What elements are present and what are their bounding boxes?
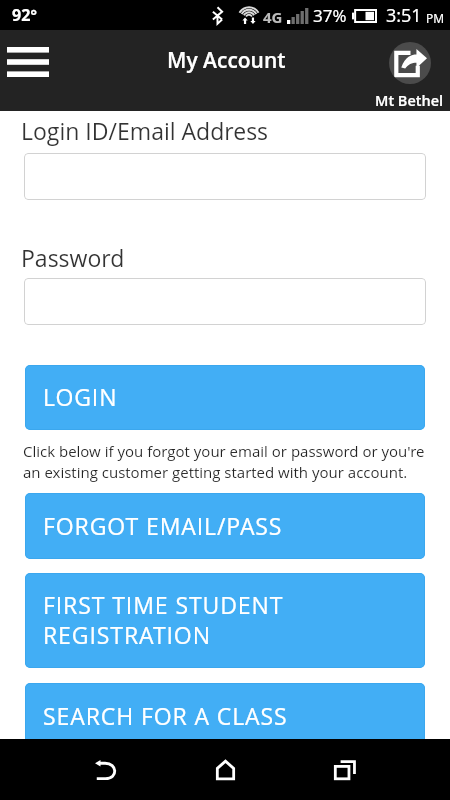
staticText: Login ID/Email Address [21,115,269,146]
button[interactable]: Recent apps [309,739,381,800]
staticText: 92° [12,4,38,26]
button[interactable]: FORGOT EMAIL/PASS [25,493,425,559]
staticText: PM [426,10,445,26]
staticText: Click below if you forgot your email or … [23,441,425,483]
button[interactable]: LOGIN [25,365,425,430]
staticText: Password [21,242,125,273]
button[interactable]: Home [189,739,261,800]
button[interactable]: Menu [7,47,49,77]
staticText: Mt Bethel [375,91,444,111]
button[interactable]: FIRST TIME STUDENT REGISTRATION [25,573,425,668]
staticText: 4G [263,7,283,27]
staticText: FIRST TIME STUDENT REGISTRATION [43,589,284,650]
staticText: 37% [313,4,347,27]
staticText: FORGOT EMAIL/PASS [43,510,283,541]
button[interactable] [24,153,426,200]
button[interactable]: Share Mt Bethel [368,30,444,111]
staticText: My Account [167,46,286,75]
button[interactable]: Back [70,739,142,800]
staticText: 3:51 [386,3,422,28]
staticText: SEARCH FOR A CLASS [43,700,288,731]
button[interactable] [24,278,426,325]
staticText: LOGIN [43,381,118,412]
button[interactable]: SEARCH FOR A CLASS [25,683,425,749]
